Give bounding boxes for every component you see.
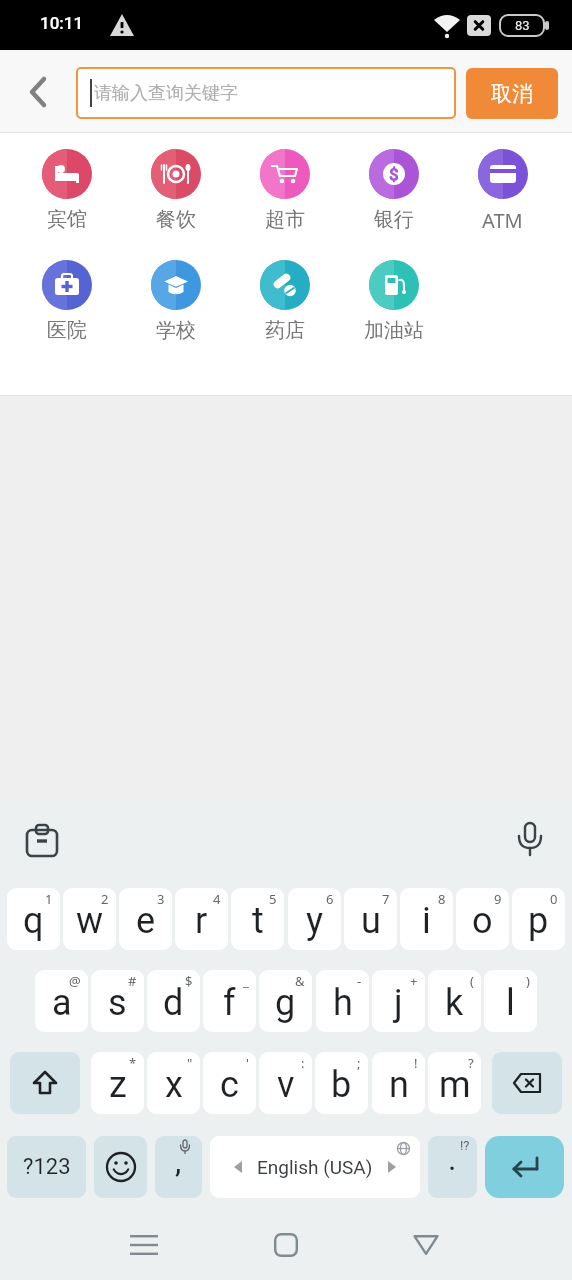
staticText: - xyxy=(357,972,362,990)
button[interactable]: l xyxy=(484,970,537,1032)
staticText: 4 xyxy=(213,890,221,908)
button[interactable]: 取消 xyxy=(466,68,558,119)
staticText: y xyxy=(306,900,324,942)
staticText: 83 xyxy=(515,18,530,33)
button[interactable]: r xyxy=(175,888,228,950)
staticText: x xyxy=(165,1064,183,1106)
staticText: @ xyxy=(69,972,81,990)
button[interactable]: 加油站 xyxy=(339,260,448,343)
button[interactable]: e xyxy=(119,888,172,950)
button[interactable] xyxy=(398,1217,454,1273)
staticText: ? xyxy=(468,1054,474,1072)
staticText: _ xyxy=(243,972,249,990)
staticText: , xyxy=(175,1142,182,1180)
staticText: u xyxy=(361,900,381,942)
button[interactable]: 宾馆 xyxy=(12,149,121,232)
button[interactable]: 超市 xyxy=(230,149,339,232)
staticText: 8 xyxy=(438,890,446,908)
button[interactable]: p xyxy=(512,888,565,950)
button[interactable]: v xyxy=(259,1052,312,1114)
staticText: v xyxy=(277,1064,295,1106)
staticText: a xyxy=(52,982,72,1024)
staticText: s xyxy=(108,982,127,1024)
staticText: # xyxy=(128,972,137,990)
button[interactable]: t xyxy=(231,888,284,950)
button[interactable] xyxy=(94,1136,147,1198)
staticText: ATM xyxy=(482,207,523,234)
button[interactable] xyxy=(14,70,58,114)
staticText: q xyxy=(23,900,44,942)
staticText: $ xyxy=(185,972,193,990)
button[interactable] xyxy=(116,1217,172,1273)
staticText: 3 xyxy=(157,890,165,908)
button[interactable]: n xyxy=(372,1052,425,1114)
button[interactable]: k xyxy=(428,970,481,1032)
staticText: m xyxy=(439,1064,471,1106)
button[interactable]: 学校 xyxy=(121,260,230,343)
button[interactable]: s xyxy=(91,970,144,1032)
button[interactable]: y xyxy=(288,888,341,950)
button[interactable]: i xyxy=(400,888,453,950)
button[interactable]: English (USA) xyxy=(210,1136,420,1198)
button[interactable]: a xyxy=(35,970,88,1032)
button[interactable]: 医院 xyxy=(12,260,121,343)
button[interactable]: , xyxy=(155,1136,202,1198)
button[interactable]: j xyxy=(372,970,425,1032)
staticText: 2 xyxy=(101,890,109,908)
staticText: & xyxy=(295,972,305,990)
button[interactable]: w xyxy=(63,888,116,950)
staticText: r xyxy=(195,900,208,942)
staticText: 餐饮 xyxy=(156,207,196,232)
staticText: 6 xyxy=(326,890,334,908)
button[interactable]: u xyxy=(344,888,397,950)
staticText: English (USA) xyxy=(257,1156,373,1178)
button[interactable]: ?123 xyxy=(7,1136,86,1198)
button[interactable]: b xyxy=(315,1052,368,1114)
button[interactable]: f xyxy=(203,970,256,1032)
button[interactable]: 请输入查询关键字 xyxy=(76,67,456,119)
button[interactable]: g xyxy=(259,970,312,1032)
button[interactable]: $ xyxy=(339,149,448,232)
staticText: 9 xyxy=(494,890,502,908)
button[interactable]: m xyxy=(428,1052,481,1114)
staticText: ) xyxy=(526,972,530,990)
button[interactable] xyxy=(504,814,556,866)
staticText: . xyxy=(448,1140,457,1178)
staticText: ' xyxy=(246,1054,249,1072)
staticText: p xyxy=(528,900,549,942)
staticText: !? xyxy=(460,1138,470,1153)
button[interactable]: ATM xyxy=(448,149,557,234)
button[interactable]: c xyxy=(203,1052,256,1114)
button[interactable]: z xyxy=(91,1052,144,1114)
button[interactable] xyxy=(492,1052,562,1114)
button[interactable]: h xyxy=(316,970,369,1032)
staticText: c xyxy=(220,1064,239,1106)
button[interactable]: d xyxy=(147,970,200,1032)
staticText: 0 xyxy=(550,890,558,908)
staticText: b xyxy=(331,1064,352,1106)
staticText: l xyxy=(506,982,515,1024)
button[interactable]: 餐饮 xyxy=(121,149,230,232)
staticText: + xyxy=(410,972,418,990)
staticText: 10:11 xyxy=(40,13,84,33)
staticText: ?123 xyxy=(23,1154,71,1180)
staticText: 加油站 xyxy=(364,318,424,343)
button[interactable]: x xyxy=(147,1052,200,1114)
staticText: k xyxy=(445,982,464,1024)
staticText: " xyxy=(187,1054,193,1072)
staticText: 5 xyxy=(269,890,277,908)
staticText: h xyxy=(333,982,353,1024)
button[interactable]: . xyxy=(428,1136,477,1198)
button[interactable] xyxy=(258,1217,314,1273)
button[interactable] xyxy=(10,1052,80,1114)
button[interactable] xyxy=(485,1136,564,1198)
button[interactable]: o xyxy=(456,888,509,950)
button[interactable] xyxy=(16,814,68,866)
staticText: 药店 xyxy=(265,318,305,343)
button[interactable]: q xyxy=(7,888,60,950)
staticText: w xyxy=(76,900,104,942)
staticText: d xyxy=(163,982,184,1024)
button[interactable]: 药店 xyxy=(230,260,339,343)
staticText: 1 xyxy=(45,890,53,908)
staticText: ! xyxy=(414,1054,418,1072)
